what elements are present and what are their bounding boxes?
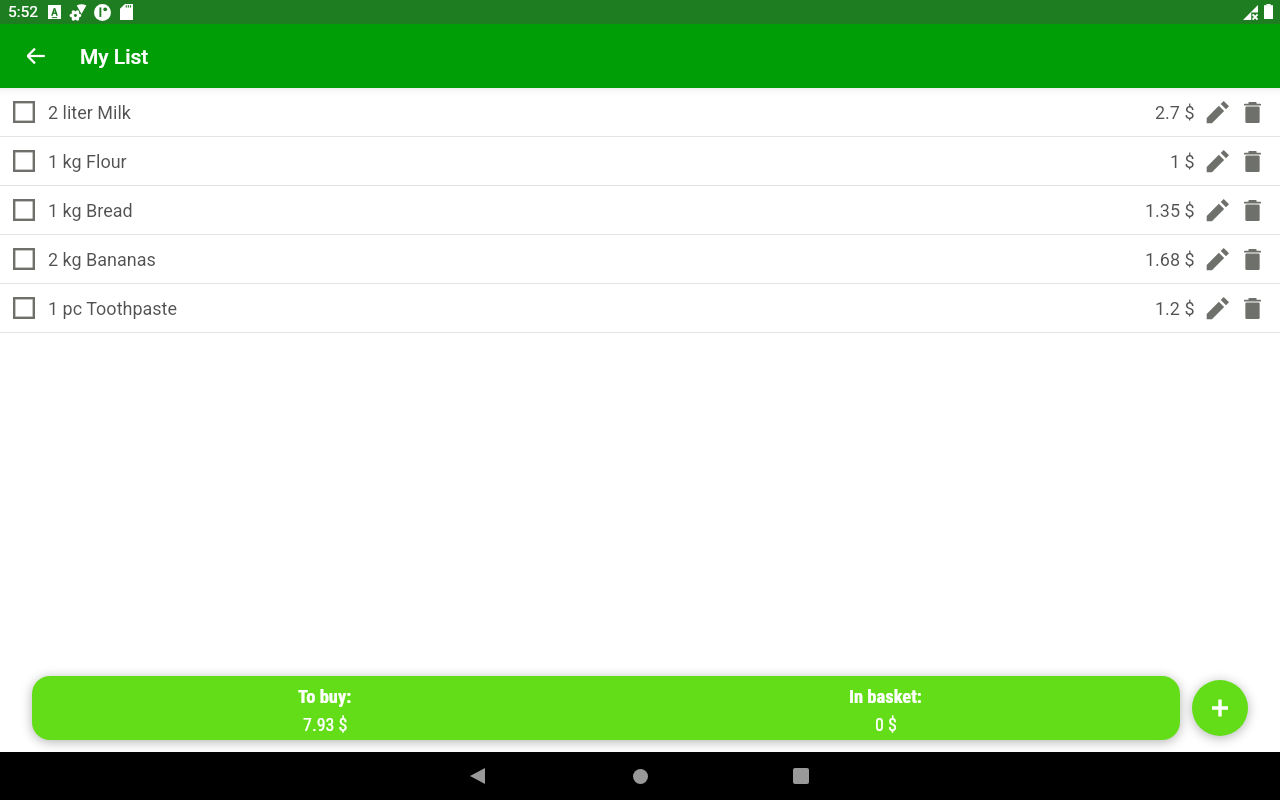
button[interactable]: Delete 1 kg Bread — [1233, 186, 1271, 234]
button[interactable]: Add item — [1192, 680, 1248, 736]
staticText: 7.93 $ — [303, 714, 348, 735]
button[interactable]: Delete 2 liter Milk — [1233, 88, 1271, 136]
button[interactable]: Edit 1 kg Bread — [1202, 186, 1232, 234]
staticText: 1 kg Flour — [48, 151, 127, 172]
button[interactable]: Delete 1 pc Toothpaste — [1233, 284, 1271, 332]
staticText: My List — [80, 45, 149, 70]
staticText: 5:52 — [8, 3, 38, 21]
staticText: 1.68 $ — [1145, 249, 1195, 270]
staticText: 1 pc Toothpaste — [48, 298, 178, 319]
button[interactable]: Toggle 1 kg Flour — [13, 150, 35, 172]
staticText: 1 $ — [1170, 151, 1195, 172]
button[interactable]: Toggle 1 kg Bread — [0, 186, 1280, 234]
staticText: 2.7 $ — [1155, 102, 1195, 123]
button[interactable]: Home — [620, 756, 660, 796]
button[interactable]: Recents — [781, 756, 821, 796]
staticText: 2 kg Bananas — [48, 249, 156, 270]
button[interactable]: Toggle 2 liter Milk — [0, 88, 1280, 136]
button[interactable]: Toggle 1 pc Toothpaste — [0, 284, 1280, 332]
button[interactable]: Toggle 1 kg Flour — [0, 137, 1280, 185]
button[interactable]: Back — [12, 32, 60, 80]
button[interactable]: Edit 2 liter Milk — [1202, 88, 1232, 136]
button[interactable]: Edit 1 pc Toothpaste — [1202, 284, 1232, 332]
staticText: 1.35 $ — [1145, 200, 1195, 221]
staticText: 1 kg Bread — [48, 200, 133, 221]
button[interactable]: Delete 2 kg Bananas — [1233, 235, 1271, 283]
staticText: 0 $ — [875, 714, 897, 735]
button[interactable]: Edit 2 kg Bananas — [1202, 235, 1232, 283]
button[interactable]: Toggle 2 kg Bananas — [0, 235, 1280, 283]
button[interactable]: Toggle 2 kg Bananas — [13, 248, 35, 270]
button[interactable]: Edit 1 kg Flour — [1202, 137, 1232, 185]
button[interactable]: Toggle 1 pc Toothpaste — [13, 297, 35, 319]
button[interactable]: Back — [457, 756, 497, 796]
button[interactable]: Toggle 2 liter Milk — [13, 101, 35, 123]
staticText: 1.2 $ — [1155, 298, 1195, 319]
button[interactable]: To buy: — [32, 676, 1180, 740]
button[interactable]: Toggle 1 kg Bread — [13, 199, 35, 221]
staticText: 2 liter Milk — [48, 102, 131, 123]
staticText: In basket: — [849, 686, 922, 708]
staticText: To buy: — [298, 686, 352, 708]
button[interactable]: Delete 1 kg Flour — [1233, 137, 1271, 185]
